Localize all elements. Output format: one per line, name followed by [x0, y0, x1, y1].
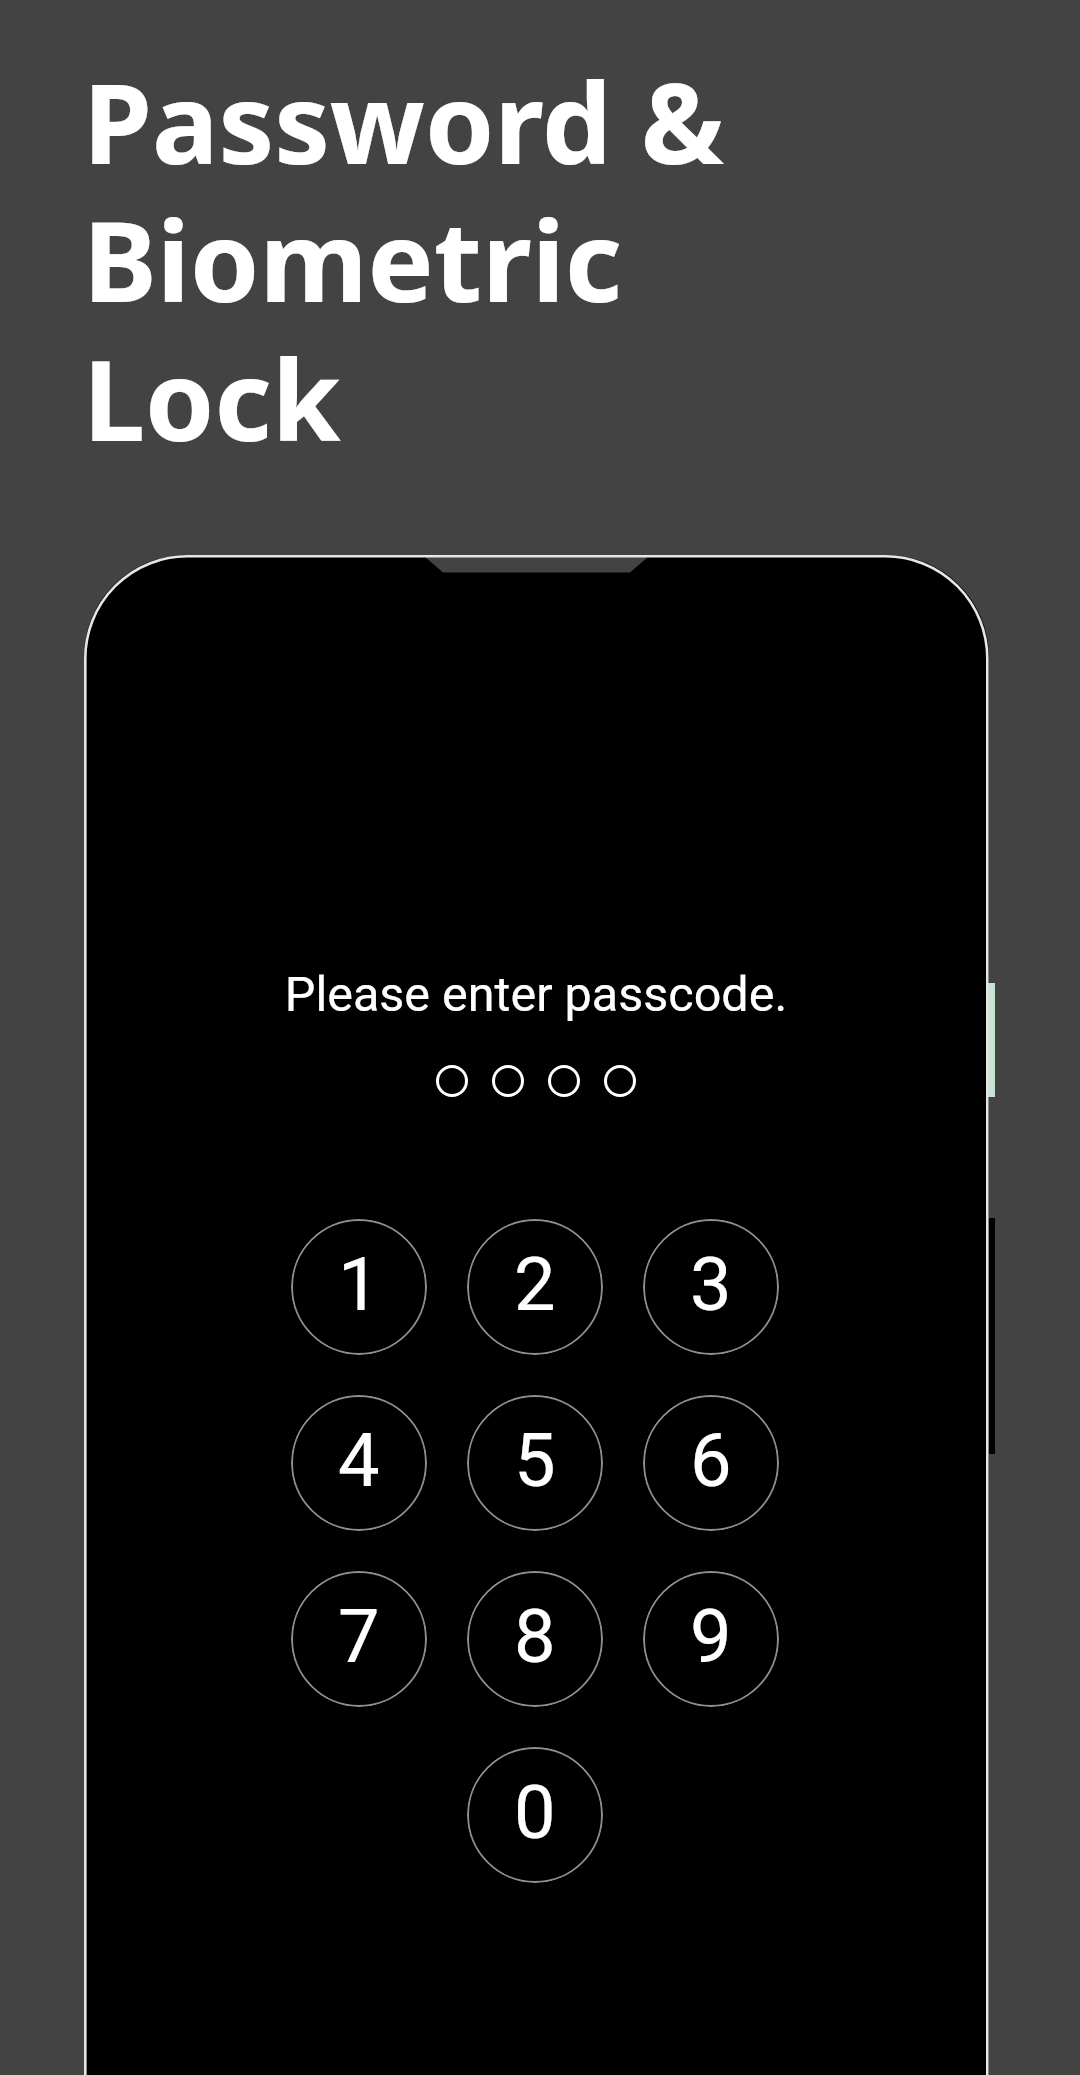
- button[interactable]: 2: [467, 1219, 603, 1355]
- staticText: 1: [338, 1241, 380, 1328]
- staticText: 0: [514, 1769, 556, 1856]
- button[interactable]: Volume button: [988, 1218, 995, 1454]
- staticText: 4: [338, 1417, 380, 1504]
- staticText: 7: [338, 1593, 380, 1680]
- staticText: 5: [514, 1417, 556, 1504]
- staticText: 2: [514, 1241, 556, 1328]
- staticText: 3: [690, 1241, 732, 1328]
- staticText: 8: [514, 1593, 556, 1680]
- button[interactable]: 7: [291, 1571, 427, 1707]
- button[interactable]: 4: [291, 1395, 427, 1531]
- button[interactable]: 8: [467, 1571, 603, 1707]
- staticText: Password & Biometric Lock: [83, 45, 724, 473]
- button[interactable]: Power button: [987, 983, 995, 1097]
- button[interactable]: 5: [467, 1395, 603, 1531]
- button[interactable]: 0: [467, 1747, 603, 1883]
- button[interactable]: 3: [643, 1219, 779, 1355]
- button[interactable]: 9: [643, 1571, 779, 1707]
- staticText: 6: [690, 1417, 732, 1504]
- staticText: Please enter passcode.: [84, 966, 988, 1023]
- button[interactable]: 1: [291, 1219, 427, 1355]
- button[interactable]: 6: [643, 1395, 779, 1531]
- staticText: 9: [690, 1593, 732, 1680]
